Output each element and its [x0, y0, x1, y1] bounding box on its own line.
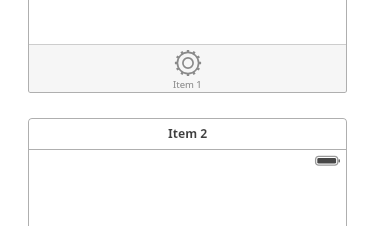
- staticText: Item 1: [173, 78, 202, 91]
- staticText: Item 2: [168, 125, 208, 142]
- button[interactable]: Item 1: [28, 0, 347, 93]
- button[interactable]: Item 2: [28, 118, 347, 226]
